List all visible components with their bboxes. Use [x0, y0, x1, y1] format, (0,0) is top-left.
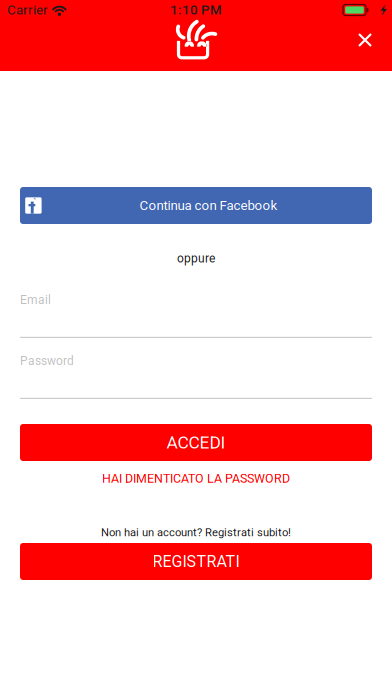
staticText: Non hai un account? Registrati subito!	[101, 526, 291, 539]
staticText: ACCEDI	[166, 432, 225, 453]
button[interactable]: HAI DIMENTICATO LA PASSWORD	[102, 472, 290, 485]
staticText: 1:10 PM	[170, 2, 222, 18]
staticText: HAI DIMENTICATO LA PASSWORD	[102, 471, 290, 486]
staticText: Continua con Facebook	[139, 198, 277, 213]
staticText: Email	[20, 293, 51, 307]
button[interactable]: ACCEDI	[20, 424, 372, 461]
staticText: Password	[20, 354, 74, 368]
staticText: REGISTRATI	[152, 552, 239, 571]
button[interactable]: Continua con Facebook	[20, 187, 372, 224]
staticText: Carrier	[7, 2, 48, 18]
button[interactable]: Close	[343, 18, 387, 62]
staticText: oppure	[177, 251, 215, 266]
button[interactable]: REGISTRATI	[20, 543, 372, 580]
